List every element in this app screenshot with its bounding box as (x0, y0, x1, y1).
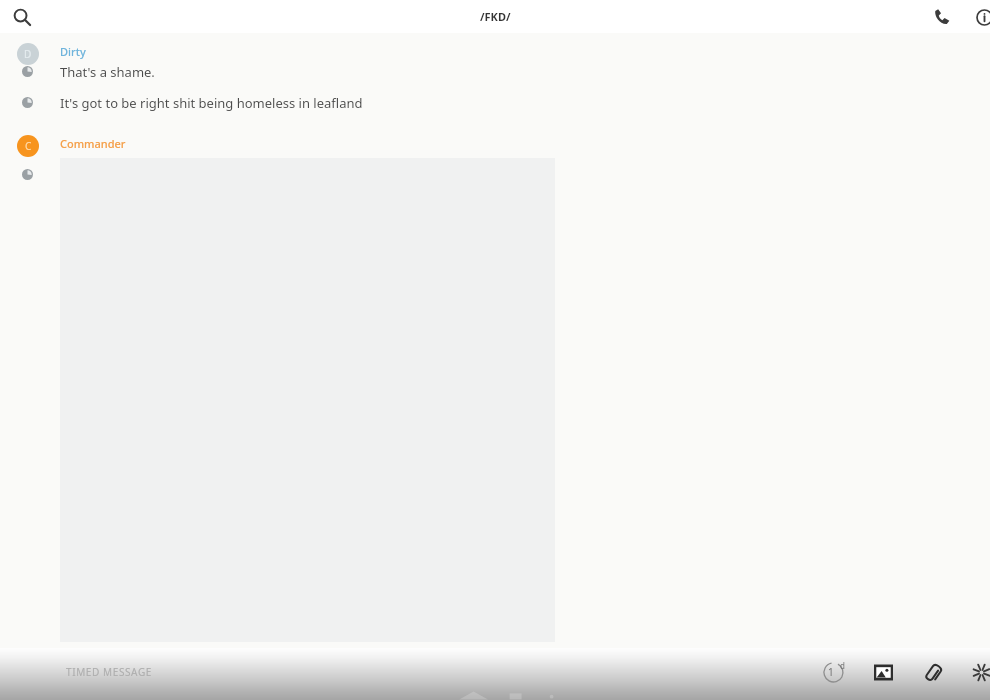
button[interactable]: Call (926, 1, 958, 33)
button[interactable]: Info (968, 1, 990, 33)
staticText: d (840, 660, 845, 671)
button[interactable]: Attach file (918, 657, 948, 687)
staticText: 1 (828, 665, 834, 679)
button[interactable]: Message duration 1 day (818, 657, 848, 687)
staticText: It's got to be right shit being homeless… (60, 94, 363, 112)
staticText: Commander (60, 136, 126, 151)
button[interactable]: Commander avatar (17, 135, 39, 157)
button[interactable]: Effects (966, 657, 990, 687)
button[interactable]: Search (6, 1, 38, 33)
button[interactable]: Send photo (868, 657, 898, 687)
staticText: D (24, 47, 32, 61)
button[interactable]: Dirty avatar (17, 43, 39, 65)
staticText: C (25, 139, 32, 153)
staticText: Dirty (60, 44, 86, 59)
staticText: That's a shame. (60, 63, 155, 81)
staticText: /FKD/ (480, 9, 511, 24)
staticText: TIMED MESSAGE (66, 665, 152, 679)
